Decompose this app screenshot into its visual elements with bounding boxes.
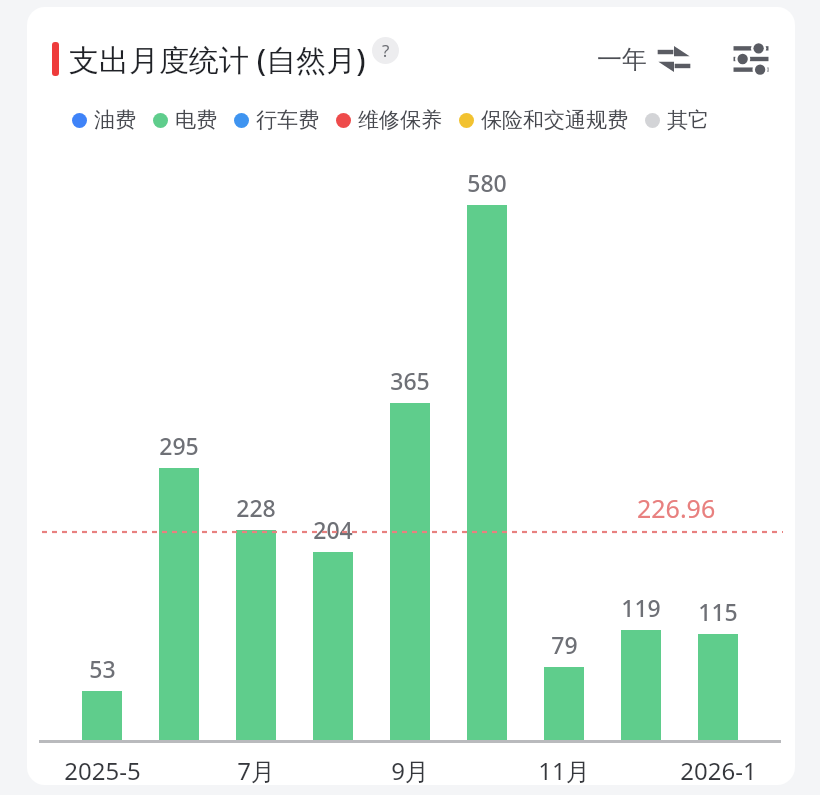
button[interactable]: 行车费 (234, 107, 319, 133)
button[interactable]: 筛选设置 (729, 37, 773, 81)
staticText: 支出月度统计 (自然月) (69, 39, 366, 80)
staticText: 电费 (175, 107, 217, 133)
staticText: 115 (698, 596, 738, 627)
staticText: 228 (236, 492, 276, 523)
staticText: 11月 (538, 754, 590, 785)
staticText: 119 (621, 592, 661, 623)
staticText: 79 (551, 629, 578, 660)
button[interactable]: 维修保养 (336, 107, 442, 133)
button[interactable]: 其它 (645, 107, 709, 133)
staticText: 295 (159, 430, 199, 461)
staticText: 7月 (237, 754, 275, 785)
staticText: 行车费 (256, 107, 319, 133)
staticText: 其它 (667, 107, 709, 133)
staticText: 580 (467, 167, 507, 198)
button[interactable] (467, 205, 507, 740)
staticText: 一年 (597, 44, 647, 75)
button[interactable]: 保险和交通规费 (459, 107, 628, 133)
button[interactable]: 帮助 (372, 37, 399, 64)
staticText: 365 (390, 365, 430, 396)
staticText: 226.96 (637, 491, 716, 525)
staticText: 2026-1 (680, 754, 757, 785)
button[interactable] (236, 530, 276, 740)
button[interactable]: 油费 (72, 107, 136, 133)
button[interactable]: 一年 (593, 38, 695, 80)
button[interactable] (159, 468, 199, 740)
button[interactable]: 电费 (153, 107, 217, 133)
staticText: 油费 (94, 107, 136, 133)
staticText: 维修保养 (358, 107, 442, 133)
button[interactable] (390, 403, 430, 740)
staticText: 9月 (391, 754, 429, 785)
staticText: ? (382, 39, 390, 62)
staticText: 53 (89, 653, 116, 684)
staticText: 2025-5 (64, 754, 141, 785)
staticText: 204 (313, 514, 353, 545)
staticText: 保险和交通规费 (481, 107, 628, 133)
